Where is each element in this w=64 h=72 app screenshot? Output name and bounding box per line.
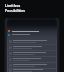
button[interactable] — [8, 51, 56, 56]
staticText: Possibilities — [5, 8, 26, 13]
button[interactable] — [8, 45, 56, 50]
button[interactable] — [8, 69, 56, 72]
button[interactable] — [8, 39, 56, 44]
staticText: Limitless — [5, 3, 21, 8]
button[interactable] — [8, 63, 56, 68]
button[interactable] — [8, 57, 56, 62]
